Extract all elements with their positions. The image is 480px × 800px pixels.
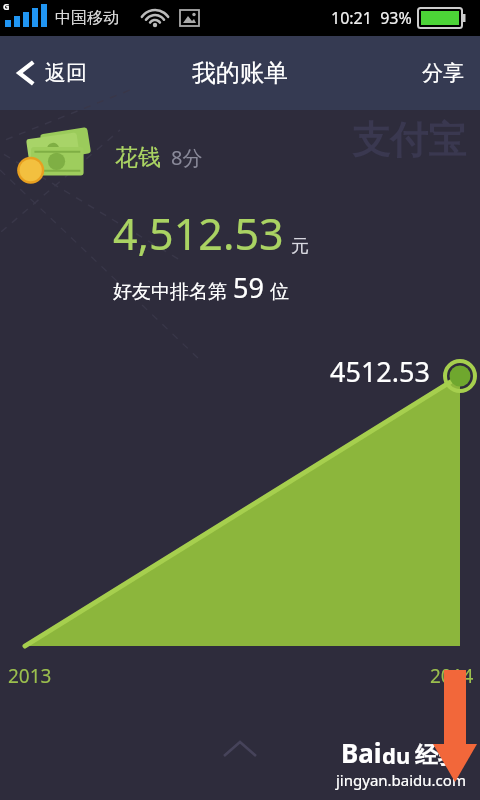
button[interactable]: 分享 [406, 50, 480, 96]
staticText: 中国移动 [55, 8, 119, 28]
staticText: 我的账单 [192, 58, 288, 88]
staticText: 元 [291, 235, 309, 258]
button[interactable]: 返回 [0, 52, 103, 94]
staticText: G [3, 0, 10, 12]
staticText: 经验 [415, 741, 461, 770]
staticText: du [382, 740, 411, 770]
staticText: 好友中排名第 [113, 280, 227, 304]
staticText: 2014 [430, 663, 474, 689]
staticText: 2013 [8, 663, 52, 689]
staticText: 位 [270, 280, 289, 304]
staticText: 4512.53 [330, 353, 430, 390]
staticText: 4,512.53 [113, 204, 284, 263]
staticText: 分享 [422, 60, 464, 86]
staticText: jingyan.baidu.com [336, 770, 466, 790]
staticText: 花钱 [115, 143, 161, 172]
staticText: 59 [233, 269, 264, 306]
staticText: 10:21 93% [331, 7, 412, 29]
staticText: Bai [341, 735, 382, 770]
staticText: 8分 [171, 144, 203, 171]
staticText: 支付宝 [352, 116, 466, 164]
staticText: 返回 [45, 60, 87, 86]
